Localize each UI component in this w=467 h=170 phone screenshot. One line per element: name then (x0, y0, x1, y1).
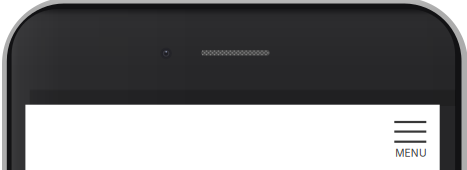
staticText: MENU (395, 147, 427, 159)
button[interactable]: Menu (0, 0, 467, 170)
